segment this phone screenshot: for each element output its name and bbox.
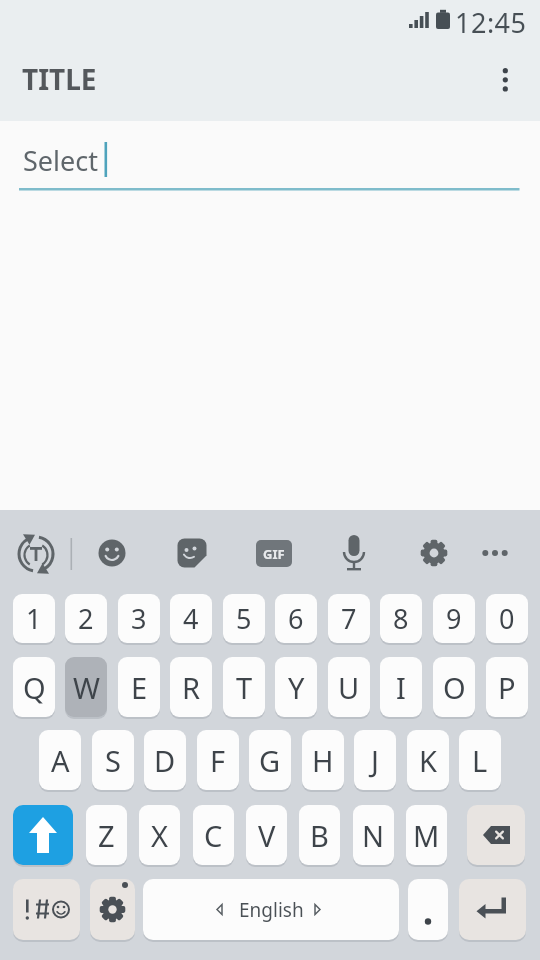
staticText: 7: [341, 600, 357, 637]
button[interactable]: M: [406, 805, 447, 865]
button[interactable]: [10, 528, 62, 580]
button[interactable]: N: [353, 805, 394, 865]
button[interactable]: I: [380, 657, 422, 717]
button[interactable]: [0, 121, 540, 200]
staticText: A: [51, 741, 70, 780]
staticText: 0: [499, 600, 515, 637]
staticText: 4: [183, 600, 199, 637]
staticText: X: [151, 816, 168, 855]
button[interactable]: [469, 527, 521, 579]
button[interactable]: [86, 527, 138, 579]
button[interactable]: O: [433, 657, 475, 717]
staticText: TITLE: [22, 60, 97, 98]
button[interactable]: V: [246, 805, 287, 865]
staticText: GIF: [263, 545, 285, 563]
button[interactable]: [467, 805, 525, 865]
button[interactable]: 7: [328, 594, 370, 643]
button[interactable]: 4: [170, 594, 212, 643]
button[interactable]: X: [139, 805, 180, 865]
button[interactable]: [459, 879, 526, 940]
staticText: R: [182, 668, 201, 707]
staticText: S: [105, 741, 121, 780]
staticText: E: [131, 668, 148, 707]
staticText: N: [362, 816, 385, 855]
button[interactable]: F: [197, 730, 239, 790]
button[interactable]: 2: [65, 594, 107, 643]
button[interactable]: English: [143, 879, 399, 940]
staticText: 12:45: [455, 4, 527, 41]
staticText: K: [419, 741, 437, 780]
staticText: H: [312, 741, 334, 780]
staticText: W: [73, 668, 100, 707]
button[interactable]: Z: [86, 805, 127, 865]
staticText: P: [498, 668, 516, 707]
staticText: G: [259, 741, 281, 780]
button[interactable]: K: [407, 730, 449, 790]
button[interactable]: R: [170, 657, 212, 717]
staticText: F: [210, 741, 226, 780]
button[interactable]: 1: [13, 594, 55, 643]
staticText: Q: [23, 668, 46, 707]
button[interactable]: J: [354, 730, 396, 790]
staticText: Y: [288, 668, 305, 707]
button[interactable]: Y: [275, 657, 317, 717]
staticText: I: [396, 668, 406, 707]
button[interactable]: C: [193, 805, 234, 865]
staticText: B: [310, 816, 329, 855]
staticText: Z: [98, 816, 115, 855]
staticText: C: [204, 816, 223, 855]
staticText: 6: [288, 600, 304, 637]
button[interactable]: GIF: [256, 540, 292, 567]
staticText: O: [443, 668, 466, 707]
button[interactable]: A: [39, 730, 81, 790]
button[interactable]: T: [223, 657, 265, 717]
staticText: English: [239, 897, 304, 923]
button[interactable]: B: [299, 805, 340, 865]
button[interactable]: S: [92, 730, 134, 790]
button[interactable]: E: [118, 657, 160, 717]
button[interactable]: H: [302, 730, 344, 790]
button[interactable]: [90, 879, 135, 940]
staticText: L: [472, 741, 488, 780]
staticText: 5: [236, 600, 252, 637]
button[interactable]: [408, 879, 448, 940]
staticText: Select: [23, 142, 98, 179]
staticText: T: [236, 668, 253, 707]
button[interactable]: 0: [486, 594, 528, 643]
button[interactable]: 6: [275, 594, 317, 643]
button[interactable]: 5: [223, 594, 265, 643]
staticText: 9: [446, 600, 462, 637]
button[interactable]: [166, 527, 218, 579]
button[interactable]: G: [249, 730, 291, 790]
button[interactable]: Q: [13, 657, 55, 717]
button[interactable]: W: [65, 657, 107, 717]
button[interactable]: P: [486, 657, 528, 717]
button[interactable]: [328, 527, 380, 579]
button[interactable]: 9: [433, 594, 475, 643]
button[interactable]: [13, 805, 73, 865]
staticText: J: [371, 741, 379, 780]
staticText: 3: [131, 600, 147, 637]
button[interactable]: [408, 527, 460, 579]
button[interactable]: 3: [118, 594, 160, 643]
button[interactable]: [13, 879, 80, 940]
staticText: U: [338, 668, 360, 707]
staticText: 1: [26, 600, 42, 637]
button[interactable]: U: [328, 657, 370, 717]
staticText: 8: [393, 600, 409, 637]
staticText: V: [258, 816, 276, 855]
button[interactable]: [487, 58, 527, 102]
staticText: 2: [78, 600, 94, 637]
staticText: M: [413, 816, 440, 855]
staticText: D: [154, 741, 176, 780]
button[interactable]: 8: [380, 594, 422, 643]
button[interactable]: L: [459, 730, 501, 790]
button[interactable]: D: [144, 730, 186, 790]
